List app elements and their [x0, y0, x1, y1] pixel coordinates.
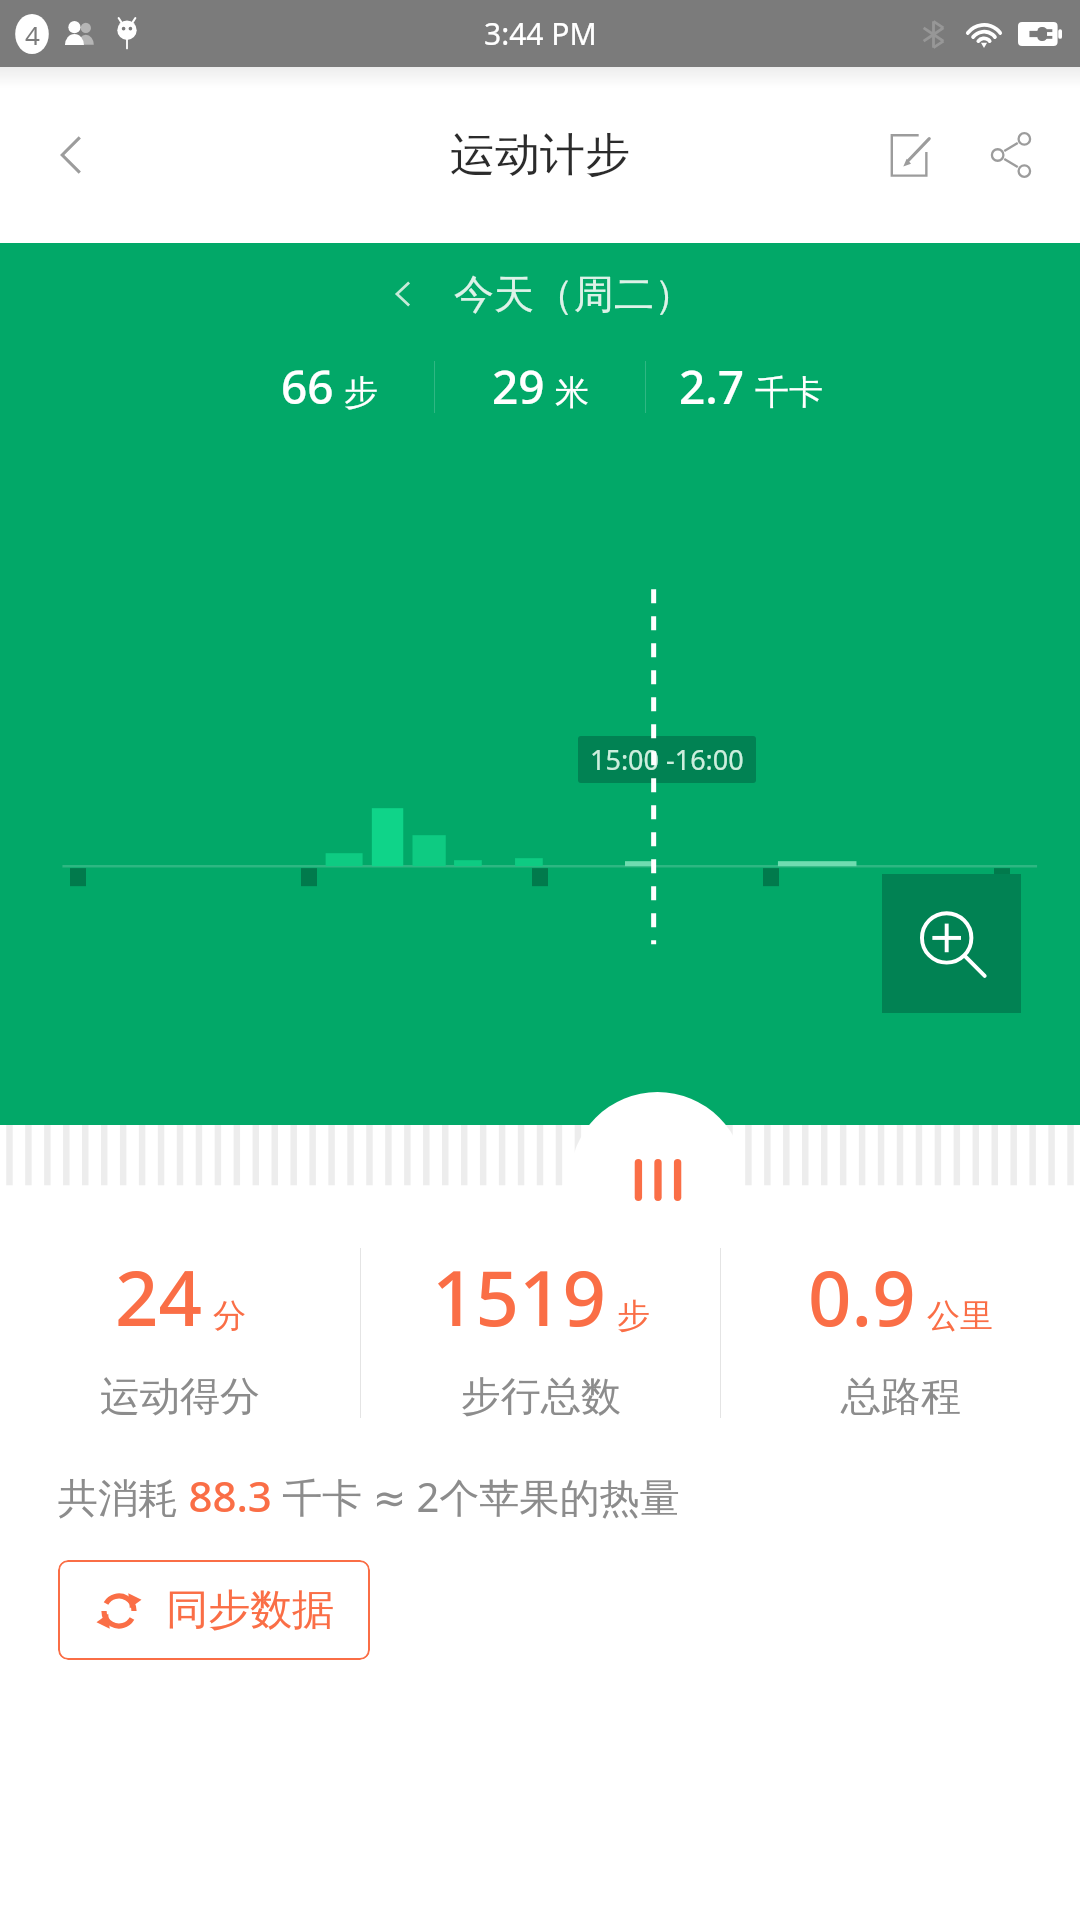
staticText: 0.9 — [808, 1245, 916, 1349]
staticText: 15:00 -16:00 — [590, 741, 744, 778]
button[interactable]: Activity detail — [570, 1092, 745, 1267]
staticText: 步 — [617, 1295, 650, 1337]
staticText: 运动计步 — [450, 127, 630, 184]
staticText: 米 — [555, 371, 589, 414]
staticText: 2.7 — [679, 355, 745, 418]
staticText: 4 — [25, 17, 40, 52]
staticText: 总路程 — [841, 1371, 961, 1421]
staticText: 同步数据 — [166, 1584, 334, 1637]
button[interactable]: Share — [968, 112, 1054, 198]
staticText: 千卡 — [755, 371, 823, 414]
staticText: 66 — [281, 355, 334, 418]
button[interactable]: 24 — [0, 1245, 360, 1421]
staticText: 3:44 PM — [484, 13, 597, 54]
staticText: 步 — [344, 371, 378, 414]
staticText: 步行总数 — [461, 1371, 621, 1421]
staticText: 今天（周二） — [454, 269, 694, 319]
staticText: 公里 — [927, 1295, 993, 1337]
staticText: 29 — [492, 355, 545, 418]
staticText: 共消耗 88.3 千卡 ≈ 2个苹果的热量 — [58, 1467, 680, 1524]
button[interactable]: Edit — [868, 112, 954, 198]
button[interactable]: 同步数据 — [58, 1560, 370, 1660]
staticText: 24 — [115, 1245, 202, 1349]
staticText: 1519 — [432, 1245, 606, 1349]
button[interactable]: 今天（周二） — [374, 261, 706, 327]
staticText: 分 — [213, 1295, 246, 1337]
button[interactable]: Zoom in — [882, 874, 1021, 1013]
button[interactable]: 1519 — [361, 1245, 720, 1421]
button[interactable]: 0.9 — [721, 1245, 1080, 1421]
staticText: 运动得分 — [100, 1371, 260, 1421]
button[interactable]: Back — [28, 112, 114, 198]
